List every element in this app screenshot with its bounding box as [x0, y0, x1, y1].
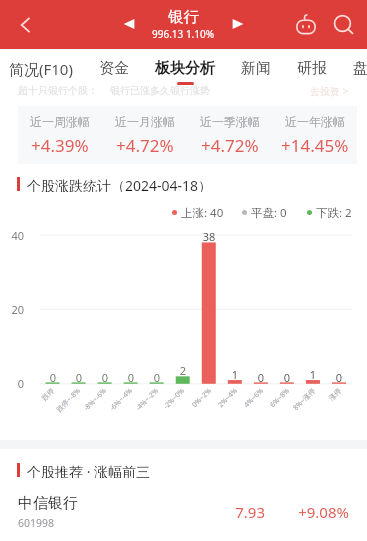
staticText: 20: [0, 302, 24, 317]
staticText: -8%~-6%: [69, 386, 109, 426]
button[interactable]: 新闻: [228, 53, 284, 91]
staticText: 0: [325, 370, 353, 385]
staticText: 0: [247, 370, 275, 385]
staticText: 上涨: 40: [181, 205, 224, 219]
staticText: -4%~-2%: [121, 386, 161, 426]
staticText: 新闻: [241, 59, 271, 78]
staticText: 中信银行: [18, 494, 78, 513]
staticText: 去投资 >: [310, 84, 349, 98]
staticText: 2: [169, 363, 197, 378]
button[interactable]: 资金: [86, 53, 142, 91]
staticText: 4%~6%: [226, 386, 266, 426]
staticText: 近一月涨幅: [115, 114, 175, 129]
staticText: 平盘: 0: [251, 205, 287, 219]
staticText: 7.93: [205, 502, 265, 522]
staticText: 996.13 1.10%: [152, 27, 215, 41]
staticText: +4.39%: [31, 134, 89, 157]
staticText: 银行: [168, 7, 199, 27]
staticText: 601998: [18, 516, 55, 530]
staticText: 跌停: [17, 386, 56, 425]
staticText: 0: [65, 370, 93, 385]
staticText: 0: [117, 370, 145, 385]
staticText: 个股推荐 · 涨幅前三: [27, 462, 151, 478]
button[interactable]: 中信银行: [0, 489, 367, 535]
button[interactable]: Search: [325, 6, 363, 44]
staticText: -6%~-4%: [95, 386, 135, 426]
staticText: -2%~0%: [147, 386, 187, 426]
staticText: 资金: [99, 59, 129, 78]
staticText: 跌停~-8%: [43, 386, 83, 426]
staticText: 简况(F10): [9, 59, 73, 79]
staticText: 近一周涨幅: [30, 114, 90, 129]
staticText: 银行已涨多久银行涨势: [110, 84, 210, 97]
staticText: 超十只银行个股：: [18, 84, 98, 97]
staticText: 6%~8%: [252, 386, 292, 426]
staticText: 近一年涨幅: [285, 114, 345, 129]
staticText: 0: [273, 370, 301, 385]
button[interactable]: 板块分析: [142, 53, 228, 91]
staticText: 0: [143, 370, 171, 385]
button[interactable]: Previous sector: [115, 10, 143, 38]
button[interactable]: 盘: [340, 53, 363, 91]
staticText: 近一季涨幅: [200, 114, 260, 129]
button[interactable]: AI assistant: [287, 6, 325, 44]
staticText: 下跌: 2: [316, 205, 352, 219]
button[interactable]: Back: [8, 7, 44, 43]
staticText: 0%~2%: [174, 386, 214, 426]
staticText: +4.72%: [116, 134, 174, 157]
staticText: 8%~涨停: [278, 386, 318, 426]
button[interactable]: Next sector: [224, 10, 252, 38]
staticText: 研报: [297, 59, 327, 78]
staticText: 2%~4%: [200, 386, 240, 426]
staticText: +14.45%: [281, 134, 349, 157]
staticText: 0: [0, 376, 24, 391]
staticText: 1: [299, 367, 327, 382]
staticText: +9.08%: [279, 502, 349, 522]
staticText: 个股涨跌统计（2024-04-18）: [27, 176, 213, 192]
staticText: 板块分析: [155, 59, 215, 78]
staticText: +4.72%: [201, 134, 259, 157]
staticText: 0: [39, 370, 67, 385]
button[interactable]: 研报: [284, 53, 340, 91]
staticText: 38: [195, 229, 223, 244]
staticText: 涨停: [304, 386, 343, 425]
button[interactable]: 简况(F10): [0, 53, 86, 91]
staticText: 1: [221, 367, 249, 382]
staticText: 40: [0, 228, 24, 243]
staticText: 0: [91, 370, 119, 385]
